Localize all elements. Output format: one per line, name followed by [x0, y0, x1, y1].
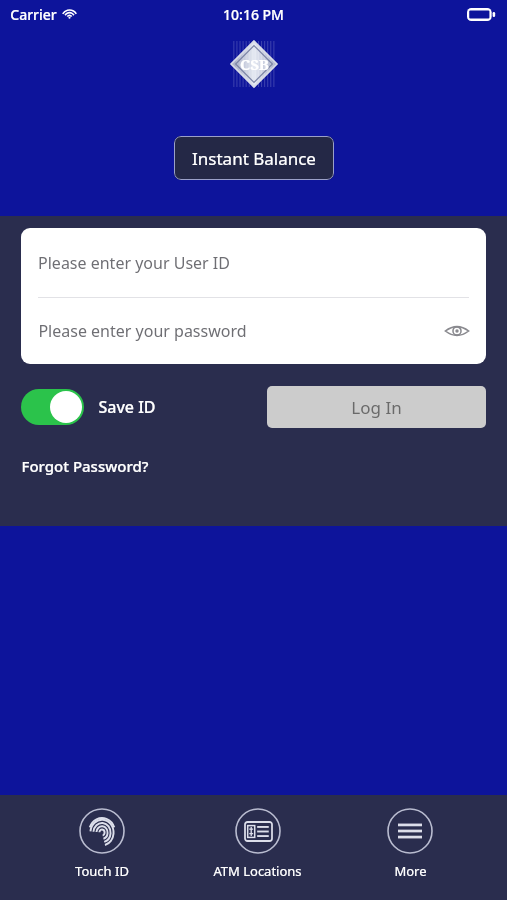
- button[interactable]: More: [377, 808, 443, 880]
- staticText: Forgot Password?: [21, 456, 149, 476]
- staticText: Please enter your User ID: [38, 252, 230, 274]
- staticText: CSB: [240, 54, 269, 74]
- staticText: 10:16 PM: [223, 5, 284, 24]
- button[interactable]: Forgot Password?: [21, 456, 149, 476]
- staticText: Log In: [351, 396, 402, 419]
- button[interactable]: ATM Locations: [203, 808, 312, 880]
- staticText: More: [394, 862, 427, 880]
- staticText: Instant Balance: [192, 147, 316, 170]
- button[interactable]: Log In: [267, 386, 486, 428]
- button[interactable]: Instant Balance: [174, 136, 334, 180]
- button[interactable]: Please enter your User ID: [21, 228, 486, 297]
- button[interactable]: Save ID: [21, 389, 156, 425]
- staticText: ATM Locations: [213, 862, 302, 880]
- button[interactable]: Touch ID: [65, 808, 139, 880]
- staticText: Touch ID: [75, 862, 129, 880]
- staticText: Please enter your password: [38, 320, 247, 342]
- button[interactable]: Please enter your password: [21, 298, 486, 364]
- staticText: Save ID: [98, 396, 156, 418]
- staticText: Carrier: [10, 5, 57, 24]
- button[interactable]: Show password: [440, 314, 474, 348]
